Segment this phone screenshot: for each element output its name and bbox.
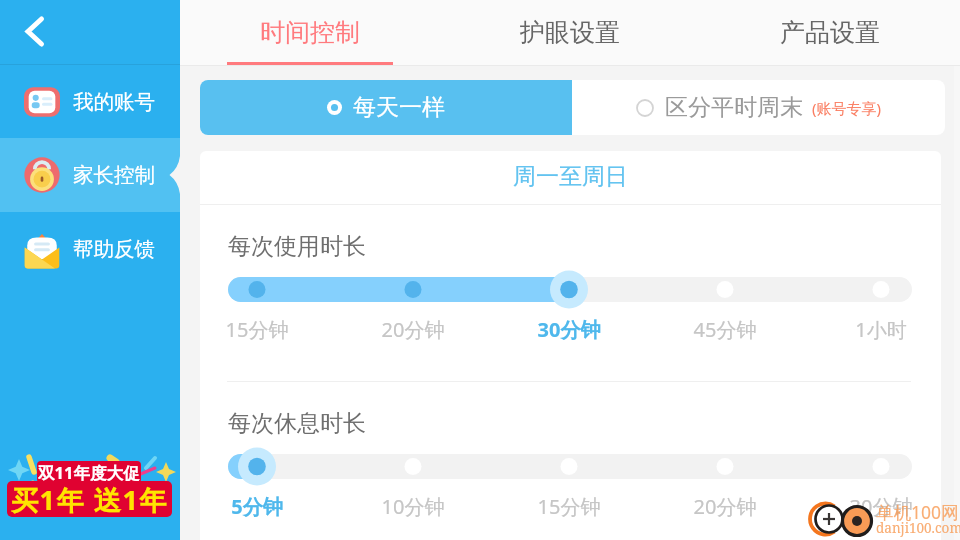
staticText: 45分钟 bbox=[665, 316, 785, 343]
staticText: 双11年度大促 bbox=[38, 461, 140, 483]
button[interactable]: 产品设置 bbox=[700, 0, 960, 66]
button[interactable]: 我的账号 bbox=[0, 65, 180, 139]
staticText: 20分钟 bbox=[353, 316, 473, 343]
button[interactable]: 时间控制 bbox=[180, 0, 440, 66]
staticText: 30分钟 bbox=[821, 493, 941, 520]
button[interactable]: 护眼设置 bbox=[440, 0, 700, 66]
staticText: 20分钟 bbox=[665, 493, 785, 520]
button[interactable]: Back bbox=[0, 0, 64, 64]
staticText: 10分钟 bbox=[353, 493, 473, 520]
staticText: 产品设置 bbox=[780, 17, 880, 48]
staticText: 单机100网 bbox=[876, 500, 959, 524]
staticText: 30分钟 bbox=[509, 316, 629, 343]
staticText: 时间控制 bbox=[260, 17, 360, 48]
staticText: danji100.com bbox=[876, 519, 960, 537]
button[interactable]: 区分平时周末 bbox=[572, 80, 945, 135]
staticText: 买1年 送1年 bbox=[11, 481, 169, 517]
staticText: 我的账号 bbox=[73, 89, 155, 115]
staticText: 区分平时周末 bbox=[665, 93, 803, 122]
staticText: 1小时 bbox=[821, 316, 941, 343]
button[interactable]: 每天一样 bbox=[200, 80, 572, 135]
staticText: 15分钟 bbox=[509, 493, 629, 520]
staticText: (账号专享) bbox=[812, 98, 882, 118]
staticText: 每次休息时长 bbox=[228, 409, 366, 438]
staticText: 每天一样 bbox=[353, 93, 445, 122]
button[interactable]: 家长控制 bbox=[0, 138, 180, 212]
staticText: 周一至周日 bbox=[513, 162, 628, 191]
button[interactable]: 帮助反馈 bbox=[0, 212, 180, 286]
staticText: 5分钟 bbox=[200, 493, 317, 520]
staticText: 每次使用时长 bbox=[228, 232, 366, 261]
staticText: 护眼设置 bbox=[520, 17, 620, 48]
staticText: 家长控制 bbox=[73, 162, 155, 188]
staticText: 帮助反馈 bbox=[73, 236, 155, 262]
button[interactable]: 双11年度大促 bbox=[0, 0, 180, 540]
staticText: 15分钟 bbox=[200, 316, 317, 343]
